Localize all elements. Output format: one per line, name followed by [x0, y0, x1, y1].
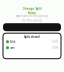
button[interactable]: Sam [3, 45, 61, 51]
staticText: Change Split [22, 7, 41, 10]
staticText: expenses in this group [16, 14, 48, 18]
staticText: Ratio [28, 11, 36, 15]
staticText: 40% [52, 46, 58, 49]
staticText: Split detail [24, 35, 40, 39]
staticText: for this group [22, 19, 42, 22]
staticText: Sam [10, 46, 14, 49]
button[interactable]: Alex [3, 39, 61, 45]
button[interactable] [0, 23, 64, 31]
staticText: Alex [10, 40, 15, 43]
staticText: 60% [52, 40, 58, 43]
